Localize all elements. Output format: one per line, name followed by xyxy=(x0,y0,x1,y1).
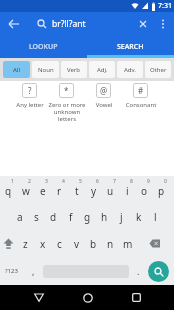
staticText: , xyxy=(32,265,35,277)
button[interactable]: ?123 xyxy=(3,257,19,285)
button[interactable]: y xyxy=(85,176,102,203)
staticText: j xyxy=(120,210,123,224)
staticText: p xyxy=(158,184,165,198)
staticText: 2 xyxy=(28,178,31,185)
staticText: y xyxy=(91,184,97,198)
staticText: l xyxy=(154,210,157,224)
button[interactable]: Adv. xyxy=(117,61,143,78)
button[interactable]: s xyxy=(28,203,45,230)
button[interactable]: h xyxy=(96,203,113,230)
button[interactable]: * xyxy=(59,83,74,98)
button[interactable]: j xyxy=(113,203,130,230)
staticText: 3 xyxy=(45,178,48,185)
staticText: u xyxy=(107,184,114,198)
button[interactable]: , xyxy=(28,257,38,285)
staticText: q xyxy=(5,184,12,198)
staticText: ? xyxy=(28,85,32,96)
button[interactable]: f xyxy=(62,203,79,230)
button[interactable] xyxy=(26,285,51,310)
button[interactable]: k xyxy=(130,203,147,230)
button[interactable]: SEARCH xyxy=(87,35,174,58)
staticText: v xyxy=(74,237,80,251)
button[interactable] xyxy=(8,18,20,30)
staticText: # xyxy=(138,85,144,96)
button[interactable]: . xyxy=(133,257,143,285)
button[interactable]: p xyxy=(153,176,170,203)
button[interactable] xyxy=(124,285,149,310)
button[interactable]: t xyxy=(68,176,85,203)
button[interactable]: Adj. xyxy=(89,61,115,78)
staticText: g xyxy=(84,210,91,224)
button[interactable]: a xyxy=(11,203,28,230)
staticText: z xyxy=(23,237,28,251)
button[interactable] xyxy=(75,285,100,310)
button[interactable]: b xyxy=(85,230,102,257)
button[interactable]: n xyxy=(102,230,119,257)
staticText: LOOKUP xyxy=(29,42,58,52)
button[interactable]: All xyxy=(3,61,30,78)
staticText: r xyxy=(57,184,62,198)
button[interactable]: x xyxy=(34,230,51,257)
staticText: 5 xyxy=(79,178,82,185)
staticText: m xyxy=(123,237,133,251)
button[interactable] xyxy=(137,18,149,30)
button[interactable]: c xyxy=(51,230,68,257)
button[interactable]: q xyxy=(0,176,17,203)
button[interactable]: g xyxy=(79,203,96,230)
button[interactable]: @ xyxy=(96,83,111,98)
button[interactable]: ? xyxy=(22,83,37,98)
button[interactable]: d xyxy=(45,203,62,230)
staticText: Vowel xyxy=(82,101,126,109)
button[interactable]: Other xyxy=(145,61,171,78)
button[interactable]: o xyxy=(136,176,153,203)
button[interactable]: w xyxy=(17,176,34,203)
staticText: k xyxy=(136,210,142,224)
button[interactable]: Verb xyxy=(61,61,87,78)
staticText: 7:31 xyxy=(158,1,172,11)
button[interactable]: e xyxy=(34,176,51,203)
staticText: o xyxy=(141,184,148,198)
staticText: a xyxy=(17,210,23,224)
staticText: i xyxy=(126,184,129,198)
staticText: 1 xyxy=(11,178,14,185)
staticText: s xyxy=(34,210,39,224)
staticText: * xyxy=(64,85,69,96)
staticText: w xyxy=(22,184,30,198)
button[interactable]: z xyxy=(17,230,34,257)
button[interactable]: i xyxy=(119,176,136,203)
staticText: 6 xyxy=(96,178,99,185)
button[interactable]: # xyxy=(133,83,148,98)
staticText: 9 xyxy=(147,178,150,185)
staticText: d xyxy=(50,210,57,224)
staticText: 7 xyxy=(113,178,116,185)
button[interactable] xyxy=(0,230,17,257)
staticText: e xyxy=(40,184,46,198)
staticText: Noun xyxy=(38,66,54,74)
staticText: t xyxy=(75,184,79,198)
staticText: 4 xyxy=(62,178,65,185)
button[interactable]: r xyxy=(51,176,68,203)
staticText: Verb xyxy=(67,66,81,74)
staticText: n xyxy=(107,237,114,251)
button[interactable]: u xyxy=(102,176,119,203)
button[interactable]: m xyxy=(119,230,136,257)
button[interactable] xyxy=(136,230,174,257)
button[interactable] xyxy=(158,19,168,29)
staticText: . xyxy=(137,265,140,277)
staticText: f xyxy=(69,210,73,224)
staticText: SEARCH xyxy=(117,42,144,52)
staticText: br?ll?ant xyxy=(52,18,86,30)
staticText: 0 xyxy=(164,178,167,185)
staticText: ?123 xyxy=(5,267,18,275)
staticText: Zero or more unknown letters xyxy=(45,101,89,123)
staticText: @ xyxy=(100,85,108,96)
staticText: x xyxy=(40,237,46,251)
button[interactable]: LOOKUP xyxy=(0,35,87,58)
button[interactable]: l xyxy=(147,203,164,230)
staticText: All xyxy=(13,66,20,74)
button[interactable]: v xyxy=(68,230,85,257)
button[interactable] xyxy=(148,261,169,282)
staticText: h xyxy=(101,210,108,224)
button[interactable]: Noun xyxy=(32,61,59,78)
